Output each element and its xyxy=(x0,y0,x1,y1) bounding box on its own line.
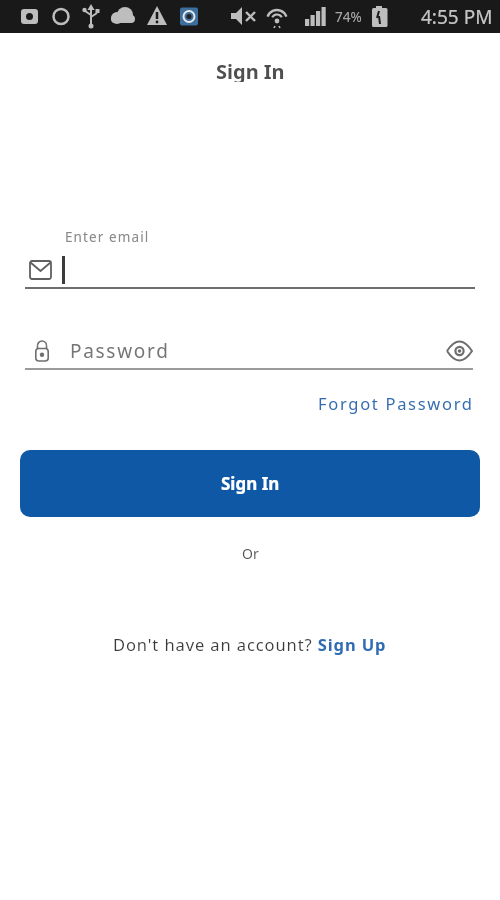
staticText: 74% xyxy=(335,8,362,26)
staticText: 4:55 PM xyxy=(421,4,493,30)
button[interactable]: Forgot Password xyxy=(318,392,474,414)
staticText: Password xyxy=(70,338,170,364)
staticText: Sign In xyxy=(221,472,280,495)
button[interactable]: Don't have an account? Sign Up xyxy=(113,633,387,655)
button[interactable]: Password xyxy=(35,338,473,364)
button[interactable] xyxy=(29,256,500,284)
staticText: Enter email xyxy=(65,228,150,246)
staticText: Or xyxy=(242,544,259,563)
button[interactable]: Sign In xyxy=(20,450,480,517)
staticText: Sign In xyxy=(216,58,285,82)
